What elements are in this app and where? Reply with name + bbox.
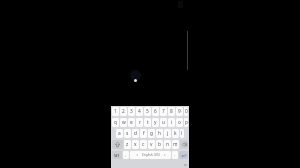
button[interactable]: o (176, 118, 183, 127)
staticText: 6 (154, 108, 157, 115)
button[interactable]: z (124, 140, 131, 149)
staticText: 8 (170, 108, 173, 115)
staticText: g (150, 130, 153, 137)
staticText: w (122, 119, 126, 126)
button[interactable]: , (123, 151, 129, 159)
staticText: 4 (138, 108, 141, 115)
button[interactable]: x (132, 140, 139, 149)
staticText: d (134, 130, 137, 137)
button[interactable]: 3 (128, 107, 135, 116)
button[interactable]: m (172, 140, 179, 149)
button[interactable]: 0 (184, 107, 188, 116)
button[interactable]: u (160, 118, 167, 127)
button[interactable]: f (140, 129, 147, 138)
staticText: o (178, 119, 181, 126)
button[interactable]: Shift (112, 140, 123, 149)
button[interactable]: r (136, 118, 143, 127)
button[interactable]: n (164, 140, 171, 149)
staticText: i (171, 119, 173, 126)
staticText: s (126, 130, 129, 137)
button[interactable]: g (148, 129, 155, 138)
button[interactable]: d (132, 129, 139, 138)
button[interactable]: 1 (112, 107, 119, 116)
button[interactable]: 4 (136, 107, 143, 116)
button[interactable]: h (156, 129, 163, 138)
button[interactable]: q (112, 118, 119, 127)
button[interactable]: j (164, 129, 171, 138)
button[interactable]: !#1 (112, 151, 122, 159)
staticText: e (130, 119, 133, 126)
staticText: f (143, 130, 145, 137)
staticText: u (162, 119, 165, 126)
staticText: , (125, 152, 127, 158)
staticText: x (134, 141, 137, 148)
staticText: 3 (130, 108, 133, 115)
button[interactable]: . (172, 151, 178, 159)
button[interactable]: 7 (160, 107, 167, 116)
staticText: b (158, 141, 161, 148)
button[interactable]: 8 (168, 107, 175, 116)
staticText: v (150, 141, 153, 148)
staticText: 1 (114, 108, 117, 115)
staticText: k (174, 130, 177, 137)
staticText: t (147, 119, 149, 126)
button[interactable]: Enter (179, 151, 188, 159)
button[interactable]: e (128, 118, 135, 127)
staticText: r (139, 119, 141, 126)
button[interactable]: 6 (152, 107, 159, 116)
staticText: !#1 (114, 153, 120, 158)
staticText: p (185, 119, 188, 126)
button[interactable]: p (184, 118, 188, 127)
staticText: c (142, 141, 145, 148)
button[interactable]: v (148, 140, 155, 149)
staticText: l (181, 130, 183, 137)
button[interactable]: t (144, 118, 151, 127)
staticText: 5 (146, 108, 149, 115)
staticText: 2 (122, 108, 125, 115)
staticText: z (126, 141, 129, 148)
button[interactable]: 2 (120, 107, 127, 116)
button[interactable]: y (152, 118, 159, 127)
button[interactable]: s (124, 129, 131, 138)
staticText: 0 (185, 108, 188, 115)
staticText: n (166, 141, 169, 148)
button[interactable]: Backspace (180, 140, 188, 149)
staticText: m (173, 141, 178, 148)
button[interactable]: b (156, 140, 163, 149)
staticText: . (174, 152, 176, 158)
button[interactable]: w (120, 118, 127, 127)
button[interactable]: 9 (176, 107, 183, 116)
button[interactable]: c (140, 140, 147, 149)
staticText: 7 (162, 108, 165, 115)
staticText: j (167, 130, 169, 137)
staticText: 9 (178, 108, 181, 115)
staticText: a (118, 130, 121, 137)
staticText: q (114, 119, 117, 126)
button[interactable]: Space, English (US) (130, 151, 171, 159)
button[interactable]: l (180, 129, 184, 138)
staticText: h (158, 130, 161, 137)
staticText: English (US) (142, 153, 160, 157)
staticText: y (154, 119, 157, 126)
button[interactable]: i (168, 118, 175, 127)
button[interactable]: 5 (144, 107, 151, 116)
button[interactable]: k (172, 129, 179, 138)
button[interactable]: a (116, 129, 123, 138)
